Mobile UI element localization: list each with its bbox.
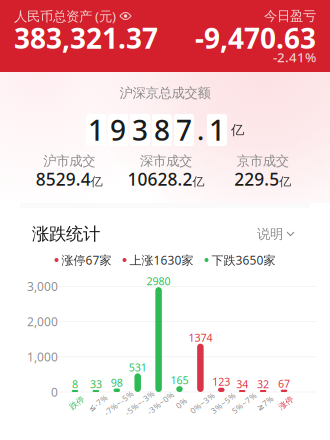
staticText: 沪深京总成交额 bbox=[119, 85, 210, 101]
staticText: 上涨1630家 bbox=[129, 252, 193, 268]
staticText: 8 bbox=[154, 111, 170, 149]
staticText: 5%~7% bbox=[230, 398, 259, 408]
staticText: 涨停 bbox=[278, 398, 294, 408]
staticText: 涨跌统计 bbox=[32, 223, 100, 245]
staticText: 沪市成交 bbox=[43, 153, 95, 169]
staticText: 98 bbox=[111, 375, 123, 390]
staticText: 1,000 bbox=[27, 349, 58, 365]
staticText: 9 bbox=[110, 111, 126, 149]
staticText: 1 bbox=[88, 111, 104, 149]
staticText: 涨停67家 bbox=[61, 252, 111, 268]
staticText: 2980 bbox=[147, 274, 171, 288]
staticText: 8529.4 bbox=[36, 167, 91, 190]
staticText: 说明 bbox=[257, 226, 283, 242]
staticText: 1 bbox=[209, 111, 225, 149]
staticText: 34 bbox=[236, 377, 248, 391]
staticText: -5%~-3% bbox=[122, 398, 157, 408]
staticText: 3,000 bbox=[27, 278, 58, 294]
staticText: 7 bbox=[176, 111, 192, 149]
staticText: 下跌3650家 bbox=[211, 252, 275, 268]
staticText: 531 bbox=[129, 360, 147, 374]
staticText: 京市成交 bbox=[237, 153, 289, 169]
staticText: 32 bbox=[257, 377, 269, 391]
staticText: ≤-7% bbox=[87, 398, 109, 408]
staticText: -3%~0% bbox=[145, 398, 177, 408]
staticText: ≥7% bbox=[256, 398, 275, 408]
staticText: . bbox=[197, 112, 204, 148]
staticText: 67 bbox=[278, 377, 290, 391]
staticText: 今日盈亏 bbox=[264, 8, 316, 24]
staticText: -9,470.63 bbox=[195, 19, 316, 57]
staticText: 2,000 bbox=[27, 314, 58, 329]
button[interactable]: 说明 bbox=[257, 223, 294, 245]
staticText: 亿 bbox=[192, 174, 204, 189]
staticText: -7%~-5% bbox=[101, 398, 136, 408]
staticText: 33 bbox=[90, 377, 102, 391]
staticText: 1374 bbox=[188, 331, 212, 345]
staticText: 亿 bbox=[91, 174, 103, 189]
staticText: 亿 bbox=[231, 122, 244, 138]
staticText: -2.41% bbox=[273, 48, 316, 66]
staticText: 10628.2 bbox=[127, 167, 192, 190]
staticText: 3%~5% bbox=[209, 398, 238, 408]
staticText: 亿 bbox=[279, 174, 291, 189]
staticText: 3 bbox=[132, 111, 148, 149]
staticText: 跌停 bbox=[69, 398, 85, 408]
staticText: 123 bbox=[212, 375, 230, 389]
staticText: 0% bbox=[175, 398, 187, 408]
staticText: 深市成交 bbox=[140, 153, 192, 169]
staticText: 人民币总资产 (元) bbox=[14, 7, 116, 25]
staticText: 229.5 bbox=[234, 167, 279, 190]
staticText: 8 bbox=[72, 377, 78, 391]
staticText: 0 bbox=[51, 384, 58, 400]
staticText: 165 bbox=[170, 373, 188, 387]
staticText: 0%~3% bbox=[188, 398, 217, 408]
staticText: 383,321.37 bbox=[14, 19, 158, 57]
